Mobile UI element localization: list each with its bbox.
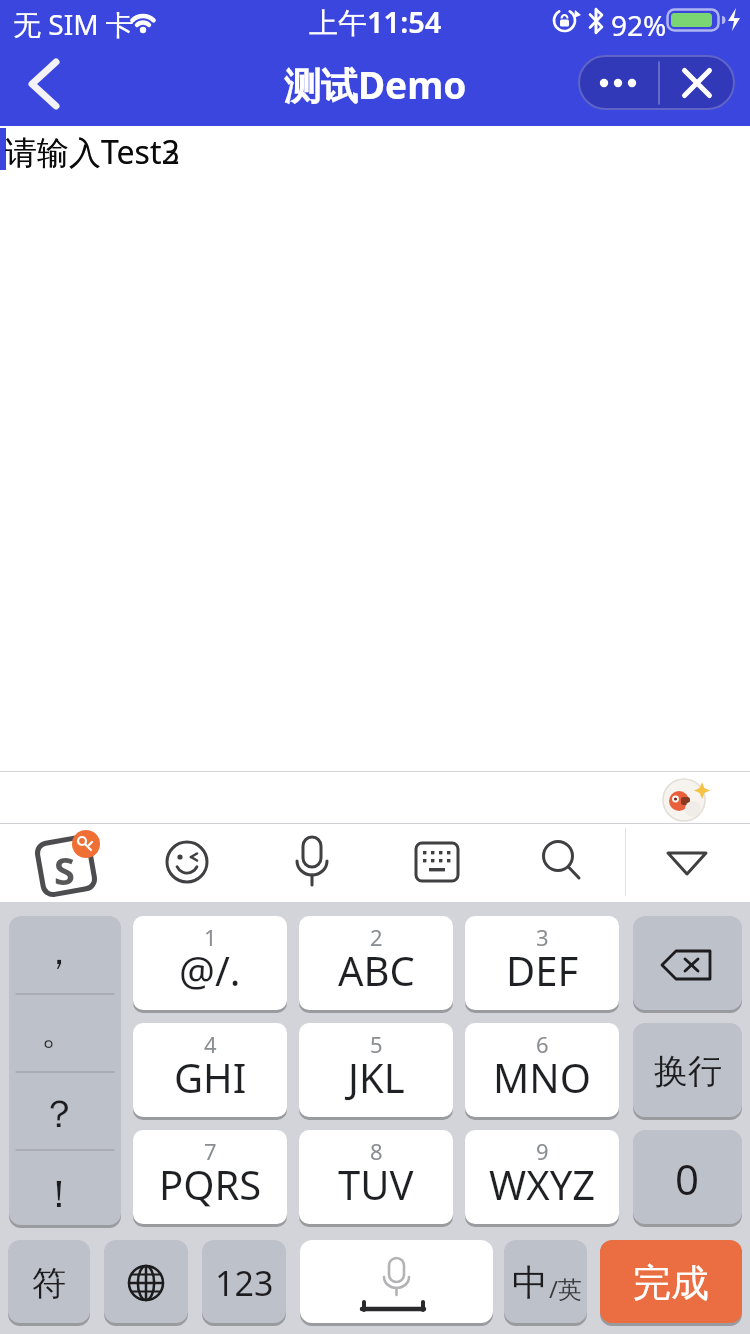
staticText: JKL <box>348 1050 405 1104</box>
staticText: 换行 <box>654 1050 722 1093</box>
staticText: ABC <box>338 943 415 997</box>
button[interactable] <box>413 840 461 884</box>
staticText: 3 <box>536 922 549 952</box>
staticText: /英 <box>549 1272 582 1305</box>
button[interactable]: 9 <box>465 1130 619 1227</box>
button[interactable]: 7 <box>133 1130 287 1227</box>
button[interactable] <box>16 52 72 116</box>
staticText: ！ <box>40 1170 78 1218</box>
button[interactable] <box>633 916 742 1013</box>
button[interactable] <box>504 1240 587 1326</box>
button[interactable]: 8 <box>299 1130 453 1227</box>
staticText: GHI <box>174 1050 247 1104</box>
staticText: 完成 <box>633 1259 709 1307</box>
button[interactable]: 3 <box>465 916 619 1013</box>
button[interactable] <box>9 916 121 1228</box>
button[interactable] <box>578 55 658 110</box>
staticText: @/. <box>179 943 241 997</box>
staticText: 上午11:54 <box>309 2 442 40</box>
button[interactable] <box>104 1240 188 1326</box>
button[interactable] <box>288 834 336 892</box>
staticText: PQRS <box>159 1157 262 1211</box>
staticText: DEF <box>506 943 579 997</box>
button[interactable]: 完成 <box>600 1240 742 1326</box>
button[interactable] <box>163 838 211 886</box>
button[interactable]: 2 <box>299 916 453 1013</box>
staticText: MNO <box>493 1050 591 1104</box>
button[interactable] <box>662 775 710 823</box>
staticText: 92% <box>611 6 667 44</box>
staticText: 无 SIM 卡 <box>13 5 134 43</box>
staticText: 7 <box>204 1136 217 1166</box>
staticText: 请输入Test3 <box>5 130 180 174</box>
button[interactable]: 0 <box>633 1130 742 1227</box>
button[interactable]: 4 <box>133 1023 287 1120</box>
staticText: ？ <box>40 1090 78 1138</box>
staticText: 9 <box>536 1136 549 1166</box>
button[interactable]: 5 <box>299 1023 453 1120</box>
button[interactable]: S <box>30 830 102 896</box>
staticText: 中 <box>512 1260 548 1305</box>
button[interactable] <box>300 1240 493 1326</box>
staticText: 6 <box>536 1029 549 1059</box>
staticText: 测试Demo <box>284 59 467 110</box>
button[interactable]: 1 <box>133 916 287 1013</box>
staticText: 4 <box>204 1029 217 1059</box>
staticText: S <box>54 844 75 896</box>
button[interactable]: 符 <box>8 1240 90 1326</box>
staticText: TUV <box>338 1157 414 1211</box>
staticText: 5 <box>370 1029 383 1059</box>
staticText: ， <box>41 929 77 974</box>
staticText: 123 <box>215 1260 274 1306</box>
staticText: 1 <box>204 922 217 952</box>
button[interactable]: 换行 <box>633 1023 742 1120</box>
staticText: 8 <box>370 1136 383 1166</box>
button[interactable] <box>663 846 711 882</box>
staticText: 请输入Test2 <box>5 130 180 174</box>
staticText: 2 <box>370 922 383 952</box>
staticText: 0 <box>675 1150 700 1207</box>
button[interactable]: 123 <box>202 1240 286 1326</box>
staticText: 。 <box>41 1009 77 1054</box>
staticText: 符 <box>32 1262 66 1305</box>
button[interactable] <box>538 838 586 886</box>
button[interactable]: 6 <box>465 1023 619 1120</box>
staticText: WXYZ <box>489 1157 596 1211</box>
button[interactable] <box>658 55 735 110</box>
